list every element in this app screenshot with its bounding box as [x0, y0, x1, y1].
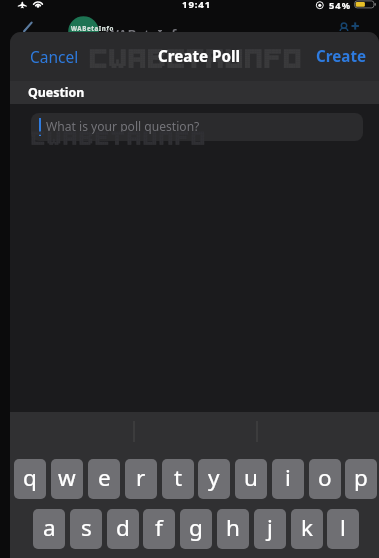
button[interactable]: q: [14, 459, 46, 499]
button[interactable]: t: [162, 459, 194, 499]
staticText: r: [136, 462, 146, 493]
button[interactable]: w: [51, 459, 83, 499]
staticText: g: [189, 512, 203, 543]
staticText: j: [267, 512, 273, 543]
staticText: WABetaInfo: [71, 24, 114, 32]
button[interactable]: u: [235, 459, 267, 499]
button[interactable]: s: [70, 509, 102, 549]
staticText: p: [354, 462, 368, 493]
staticText: Create: [316, 46, 367, 67]
button[interactable]: a: [33, 509, 65, 549]
staticText: Cancel: [30, 46, 79, 67]
staticText: What is your poll question?: [46, 118, 200, 134]
staticText: q: [23, 462, 37, 493]
button[interactable]: y: [198, 459, 230, 499]
button[interactable]: e: [88, 459, 120, 499]
button[interactable]: f: [143, 509, 175, 549]
staticText: t: [174, 462, 183, 493]
button[interactable]: l: [327, 509, 359, 549]
staticText: u: [244, 462, 258, 493]
staticText: a: [43, 512, 56, 543]
staticText: Question: [28, 84, 85, 101]
button[interactable]: j: [254, 509, 286, 549]
staticText: y: [208, 462, 220, 493]
staticText: s: [81, 512, 92, 543]
button[interactable]: h: [217, 509, 249, 549]
button[interactable]: What is your poll question?: [31, 113, 363, 141]
button[interactable]: d: [107, 509, 139, 549]
staticText: e: [98, 462, 111, 493]
button[interactable]: k: [291, 509, 323, 549]
staticText: l: [340, 512, 346, 543]
staticText: k: [301, 512, 314, 543]
button[interactable]: r: [125, 459, 157, 499]
staticText: i: [285, 462, 291, 493]
staticText: h: [226, 512, 240, 543]
staticText: 54%: [329, 0, 352, 12]
staticText: f: [155, 512, 163, 543]
button[interactable]: p: [345, 459, 377, 499]
staticText: WABetaInfo: [106, 26, 185, 44]
staticText: w: [58, 462, 76, 493]
staticText: d: [116, 512, 130, 543]
button[interactable]: Cancel: [30, 46, 79, 67]
staticText: Create Poll: [158, 46, 240, 67]
button[interactable]: o: [309, 459, 341, 499]
button[interactable]: g: [180, 509, 212, 549]
staticText: 19:41: [182, 0, 212, 11]
staticText: o: [318, 462, 332, 493]
button[interactable]: Create: [316, 46, 367, 67]
button[interactable]: i: [272, 459, 304, 499]
